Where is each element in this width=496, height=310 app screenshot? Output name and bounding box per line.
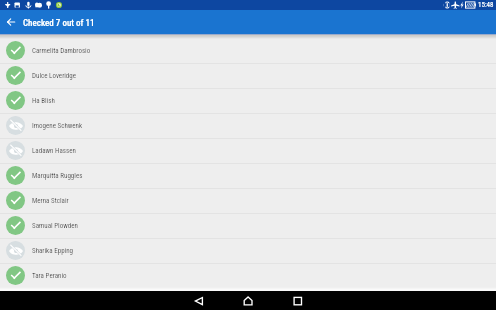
button[interactable]: Navigate up [0, 10, 22, 34]
staticText: Carmelita Dambrosio [32, 47, 91, 55]
button[interactable]: Ha Blish [0, 88, 496, 113]
button[interactable]: Dulce Loveridge [0, 63, 496, 88]
button[interactable]: Tara Peranio [0, 263, 496, 288]
button[interactable]: Marquitta Ruggles [0, 163, 496, 188]
button[interactable]: Back [188, 291, 210, 310]
staticText: Merna Stclair [32, 197, 69, 205]
button[interactable]: Carmelita Dambrosio [0, 38, 496, 63]
staticText: Sharika Epping [32, 247, 74, 255]
button[interactable]: Samual Plowden [0, 213, 496, 238]
staticText: Ladawn Hassen [32, 147, 76, 155]
staticText: Checked 7 out of 11 [23, 18, 95, 29]
button[interactable]: Ladawn Hassen [0, 138, 496, 163]
button[interactable]: Recent apps [287, 291, 309, 310]
staticText: Imogene Schwenk [32, 122, 83, 130]
button[interactable]: Imogene Schwenk [0, 113, 496, 138]
staticText: Ha Blish [32, 97, 55, 105]
staticText: 15:48 [478, 1, 494, 9]
staticText: Samual Plowden [32, 222, 78, 230]
staticText: Dulce Loveridge [32, 72, 77, 80]
button[interactable]: Sharika Epping [0, 238, 496, 263]
staticText: Marquitta Ruggles [32, 172, 83, 180]
staticText: Tara Peranio [32, 272, 67, 280]
button[interactable]: Merna Stclair [0, 188, 496, 213]
button[interactable]: Home [237, 291, 259, 310]
